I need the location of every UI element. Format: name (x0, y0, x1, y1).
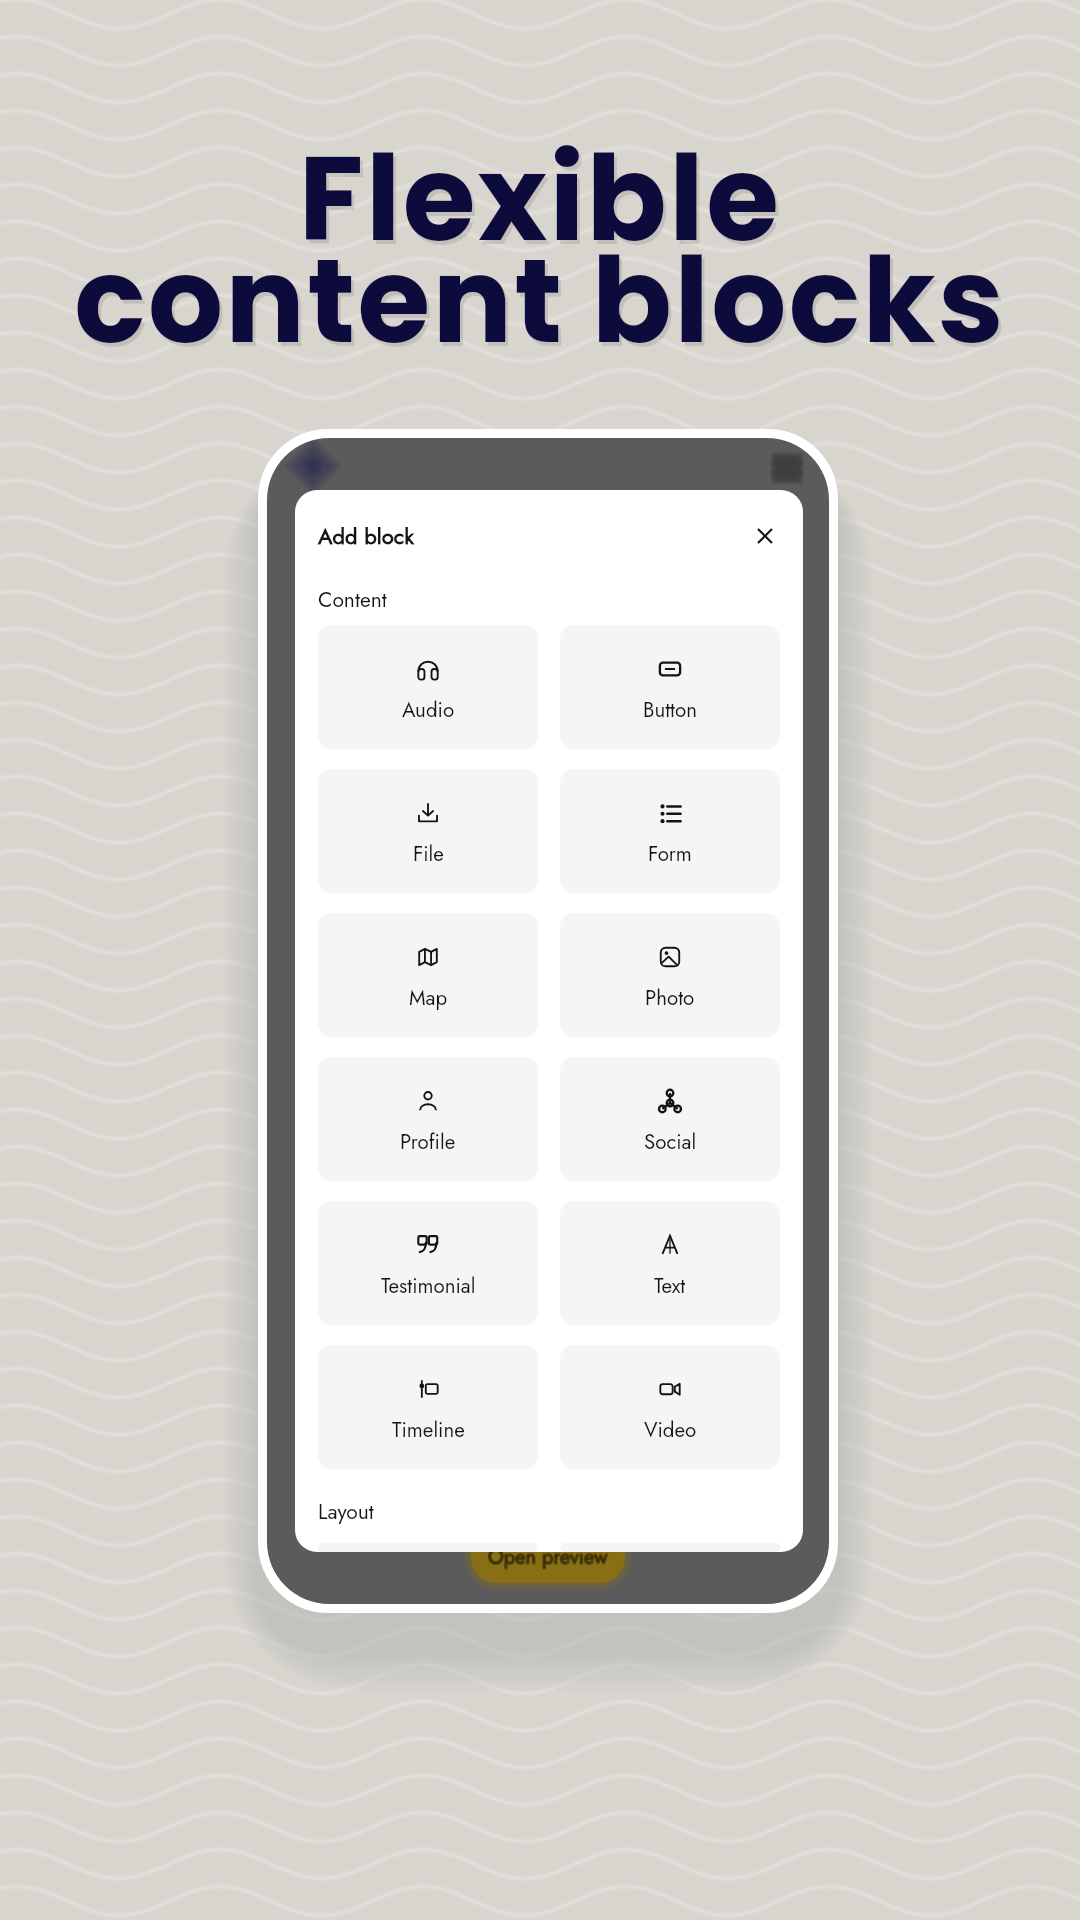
staticText: Photo (645, 983, 695, 1013)
button[interactable]: Map (318, 913, 538, 1037)
staticText: Flexible content blocks (0, 116, 1080, 383)
button[interactable]: Photo (560, 913, 780, 1037)
staticText: Audio (402, 695, 455, 725)
button[interactable]: File (318, 769, 538, 893)
staticText: Open preview (488, 1543, 608, 1572)
staticText: Open preview (487, 1544, 607, 1573)
button[interactable]: Profile (318, 1057, 538, 1181)
staticText: Open preview (487, 1542, 607, 1571)
staticText: Open preview (489, 1542, 609, 1571)
staticText: Open preview (489, 1544, 609, 1573)
button[interactable]: Close (750, 521, 780, 551)
staticText: Content (318, 585, 387, 615)
button[interactable]: Video (560, 1345, 780, 1469)
staticText: Open preview (488, 1542, 608, 1571)
button[interactable]: Text (560, 1201, 780, 1325)
staticText: Flexible content blocks (3, 120, 1080, 387)
button[interactable]: Audio (318, 625, 538, 749)
staticText: Open preview (488, 1544, 608, 1573)
staticText: Add block (318, 520, 415, 552)
button[interactable]: Social (560, 1057, 780, 1181)
button[interactable]: Timeline (318, 1345, 538, 1469)
staticText: Profile (400, 1127, 456, 1157)
staticText: Testimonial (381, 1271, 476, 1301)
button[interactable]: Form (560, 769, 780, 893)
staticText: Layout (318, 1497, 374, 1527)
staticText: Button (643, 695, 697, 725)
staticText: Video (644, 1415, 697, 1445)
button[interactable]: Button (560, 625, 780, 749)
staticText: Open preview (487, 1543, 607, 1572)
staticText: Open preview (489, 1543, 609, 1572)
staticText: Timeline (392, 1415, 465, 1445)
staticText: Text (654, 1271, 686, 1301)
staticText: Map (409, 983, 448, 1013)
staticText: Form (648, 839, 692, 869)
button[interactable]: Open preview (471, 1531, 625, 1583)
staticText: Social (644, 1127, 697, 1157)
button[interactable]: Testimonial (318, 1201, 538, 1325)
staticText: File (413, 839, 444, 869)
